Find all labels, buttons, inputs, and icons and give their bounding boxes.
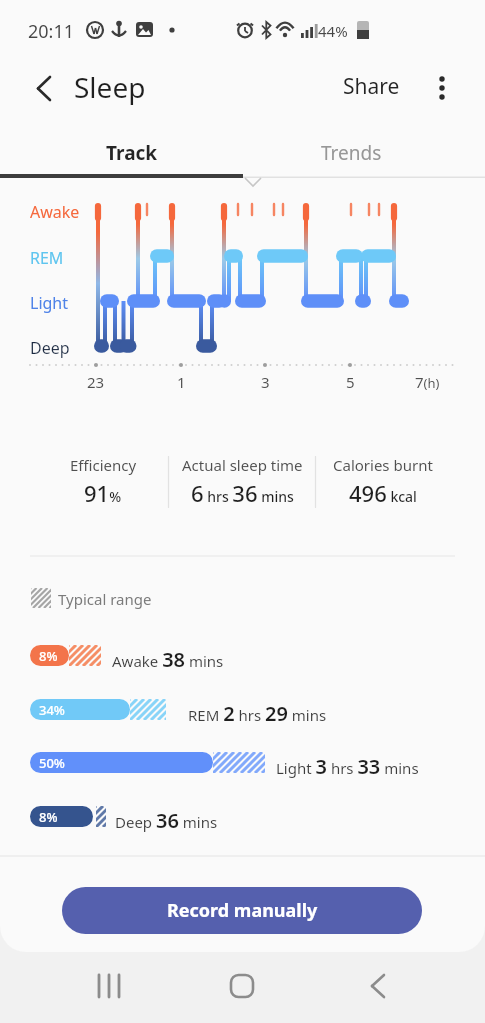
staticText: Efficiency bbox=[70, 455, 137, 475]
staticText: 1 bbox=[177, 372, 186, 392]
staticText: 91% bbox=[84, 478, 122, 508]
staticText: Deep bbox=[30, 337, 70, 359]
staticText: 8% bbox=[39, 647, 58, 665]
staticText: REM 2 hrs 29 mins bbox=[188, 700, 327, 727]
staticText: 20:11 bbox=[28, 19, 75, 44]
staticText: 23 bbox=[87, 372, 105, 392]
staticText: Share bbox=[343, 72, 400, 101]
staticText: 7(h) bbox=[415, 372, 440, 392]
staticText: Track bbox=[106, 140, 158, 166]
staticText: Sleep bbox=[74, 68, 146, 106]
button[interactable]: Record manually bbox=[62, 887, 422, 934]
staticText: Light 3 hrs 33 mins bbox=[276, 753, 419, 780]
button[interactable]: Track bbox=[10, 130, 253, 176]
staticText: REM bbox=[30, 247, 64, 269]
staticText: Deep 36 mins bbox=[115, 807, 218, 834]
staticText: Trends bbox=[321, 140, 382, 166]
staticText: Record manually bbox=[167, 898, 318, 923]
staticText: 44% bbox=[318, 21, 348, 41]
staticText: Awake 38 mins bbox=[112, 646, 224, 673]
staticText: 8% bbox=[39, 808, 58, 826]
button[interactable] bbox=[80, 965, 136, 1013]
button[interactable] bbox=[214, 965, 270, 1013]
staticText: 34% bbox=[39, 701, 65, 719]
button[interactable] bbox=[24, 64, 68, 108]
staticText: 50% bbox=[39, 754, 65, 772]
staticText: Typical range bbox=[58, 589, 152, 609]
button[interactable]: Trends bbox=[243, 130, 459, 176]
staticText: 5 bbox=[346, 372, 355, 392]
button[interactable] bbox=[350, 965, 406, 1013]
staticText: 496 kcal bbox=[349, 478, 417, 508]
button[interactable]: Share bbox=[337, 66, 406, 107]
staticText: 6 hrs 36 mins bbox=[191, 478, 294, 508]
staticText: Light bbox=[30, 292, 69, 314]
staticText: Calories burnt bbox=[333, 455, 433, 475]
button[interactable] bbox=[424, 64, 464, 108]
staticText: Actual sleep time bbox=[182, 455, 303, 475]
staticText: Awake bbox=[30, 201, 80, 223]
staticText: 3 bbox=[261, 372, 270, 392]
